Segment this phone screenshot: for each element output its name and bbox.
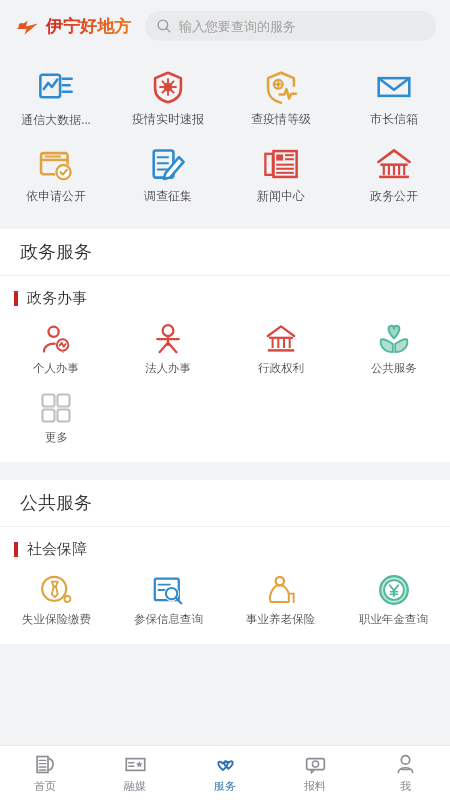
button[interactable]: 法人办事 [112, 322, 224, 377]
staticText: 依申请公开 [26, 188, 86, 203]
button[interactable]: 参保信息查询 [112, 573, 224, 628]
button[interactable]: 融媒 [90, 746, 180, 800]
staticText: 首页 [34, 779, 56, 793]
staticText: 政务公开 [370, 188, 418, 203]
staticText: 参保信息查询 [134, 612, 203, 626]
staticText: 事业养老保险 [246, 612, 315, 626]
button[interactable]: 职业年金查询 [337, 573, 450, 628]
staticText: 伊宁好地方 [46, 16, 131, 37]
button[interactable]: 服务 [180, 746, 270, 800]
staticText: 行政权利 [258, 361, 304, 375]
button[interactable]: 个人办事 [0, 322, 112, 377]
button[interactable]: 首页 [0, 746, 90, 800]
button[interactable]: 调查征集 [112, 145, 224, 205]
button[interactable]: 政务公开 [337, 145, 450, 205]
staticText: 市长信箱 [370, 111, 418, 126]
button[interactable]: 报料 [270, 746, 360, 800]
button[interactable]: 失业保险缴费 [0, 573, 112, 628]
button[interactable]: 依申请公开 [0, 145, 112, 205]
staticText: 政务服务 [20, 241, 92, 264]
button[interactable]: 输入您要查询的服务 [145, 11, 436, 41]
staticText: 公共服务 [371, 361, 417, 375]
button[interactable]: 事业养老保险 [224, 573, 337, 628]
staticText: 失业保险缴费 [22, 612, 91, 626]
staticText: 报料 [304, 779, 326, 793]
staticText: 疫情实时速报 [132, 111, 204, 126]
button[interactable]: 公共服务 [337, 322, 450, 377]
staticText: 更多 [45, 430, 68, 444]
staticText: 输入您要查询的服务 [179, 18, 296, 34]
button[interactable]: 查疫情等级 [224, 68, 337, 128]
button[interactable]: 通信大数据... [0, 68, 112, 129]
button[interactable]: 疫情实时速报 [112, 68, 224, 128]
staticText: 我 [400, 779, 411, 793]
button[interactable]: 行政权利 [224, 322, 337, 377]
button[interactable]: Logo [14, 13, 40, 39]
button[interactable]: 我 [360, 746, 450, 800]
staticText: 个人办事 [33, 361, 79, 375]
staticText: 职业年金查询 [359, 612, 428, 626]
staticText: 查疫情等级 [251, 111, 311, 126]
staticText: 通信大数据... [21, 111, 91, 127]
button[interactable]: 市长信箱 [337, 68, 450, 128]
staticText: 公共服务 [20, 492, 92, 515]
staticText: 融媒 [124, 779, 146, 793]
staticText: 法人办事 [145, 361, 191, 375]
staticText: 社会保障 [27, 540, 87, 559]
button[interactable]: 更多 [0, 391, 112, 446]
staticText: 政务办事 [27, 289, 87, 308]
staticText: 调查征集 [144, 188, 192, 203]
button[interactable]: 新闻中心 [224, 145, 337, 205]
staticText: 新闻中心 [257, 188, 305, 203]
staticText: 服务 [214, 779, 236, 793]
